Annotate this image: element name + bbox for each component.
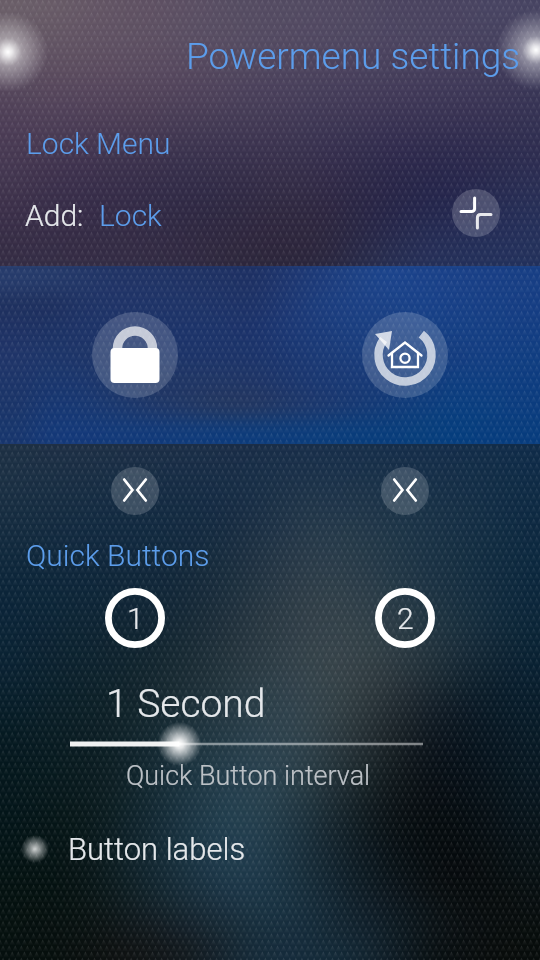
- button[interactable]: Lock: [92, 312, 178, 398]
- staticText: 1 Second: [106, 681, 266, 727]
- staticText: Quick Buttons: [26, 538, 210, 573]
- button[interactable]: Button labels: [0, 818, 540, 880]
- staticText: Quick Button interval: [126, 760, 371, 792]
- staticText: Lock: [99, 198, 162, 233]
- button[interactable]: Add entry: [452, 189, 500, 237]
- staticText: 2: [397, 601, 414, 636]
- staticText: Add:: [25, 198, 99, 233]
- staticText: Lock Menu: [26, 126, 171, 161]
- button[interactable]: Soft reboot: [362, 312, 448, 398]
- staticText: 1: [127, 601, 144, 636]
- button[interactable]: 2: [375, 588, 435, 648]
- button[interactable]: Remove reboot: [381, 467, 429, 515]
- button[interactable]: Remove lock: [111, 467, 159, 515]
- staticText: Powermenu settings: [186, 35, 521, 78]
- button[interactable]: Quick button interval slider: [40, 722, 500, 766]
- button[interactable]: 1: [105, 588, 165, 648]
- staticText: Button labels: [68, 831, 246, 867]
